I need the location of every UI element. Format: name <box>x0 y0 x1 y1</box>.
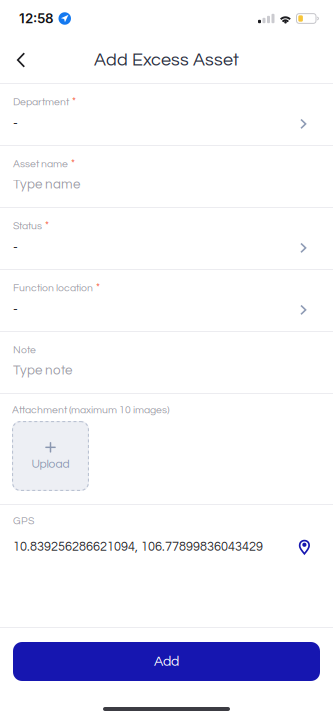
staticText: Type name <box>13 178 80 191</box>
staticText: Type note <box>13 364 72 377</box>
staticText: - <box>13 241 18 255</box>
button[interactable]: Back <box>0 37 42 83</box>
button[interactable]: Department <box>0 84 333 146</box>
staticText: Asset name <box>13 159 68 169</box>
button[interactable]: Function location <box>0 270 333 332</box>
button[interactable]: Status <box>0 208 333 270</box>
staticText: - <box>13 117 18 131</box>
staticText: * <box>72 96 76 107</box>
staticText: Upload <box>31 458 69 470</box>
staticText: Add <box>154 654 179 669</box>
staticText: * <box>96 282 100 293</box>
staticText: Function location <box>13 283 93 293</box>
button[interactable]: Show on map <box>299 539 310 554</box>
staticText: GPS <box>13 516 34 526</box>
staticText: Department <box>13 97 69 107</box>
button[interactable]: Note <box>0 332 333 394</box>
staticText: 12:58 <box>19 10 54 26</box>
button[interactable]: Add <box>13 642 320 681</box>
staticText: 10.839256286621094, 106.77899836043429 <box>13 540 263 553</box>
staticText: * <box>71 158 75 169</box>
button[interactable]: Upload <box>12 421 89 491</box>
staticText: Status <box>13 221 42 231</box>
staticText: - <box>13 303 18 317</box>
button[interactable]: Asset name <box>0 146 333 208</box>
staticText: Attachment (maximum 10 images) <box>12 405 170 415</box>
staticText: * <box>45 220 49 231</box>
staticText: Add Excess Asset <box>94 51 239 69</box>
staticText: Note <box>13 345 36 355</box>
